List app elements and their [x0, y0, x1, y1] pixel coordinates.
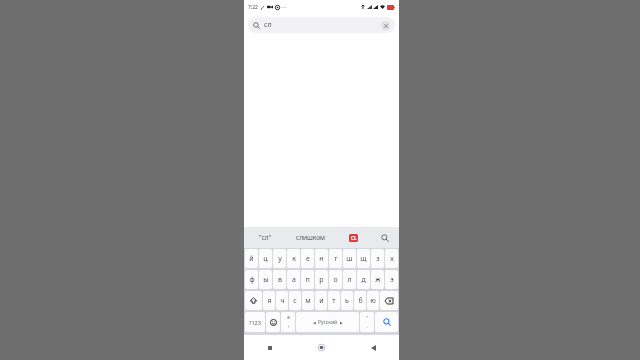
- button[interactable]: ь: [341, 291, 353, 310]
- other: Search: [253, 22, 260, 29]
- staticText: ж: [375, 275, 381, 285]
- staticText: в: [278, 275, 282, 285]
- button[interactable]: м: [302, 291, 314, 310]
- button[interactable]: Emoji: [266, 312, 280, 332]
- button[interactable]: "сл": [244, 227, 286, 248]
- button[interactable]: о: [329, 270, 342, 289]
- button[interactable]: Backspace: [380, 291, 398, 310]
- staticText: э: [390, 275, 394, 285]
- staticText: ю: [370, 296, 376, 306]
- button[interactable]: ю: [367, 291, 379, 310]
- staticText: з: [376, 254, 380, 264]
- staticText: м: [305, 296, 311, 306]
- staticText: т: [332, 296, 336, 306]
- button[interactable]: ф: [245, 270, 258, 289]
- button[interactable]: ц: [259, 249, 272, 268]
- button[interactable]: в: [273, 270, 286, 289]
- staticText: ь: [345, 296, 349, 306]
- button[interactable]: ы: [259, 270, 272, 289]
- button[interactable]: л: [343, 270, 356, 289]
- staticText: а: [292, 275, 296, 285]
- staticText: щ: [360, 254, 367, 264]
- staticText: к: [292, 254, 296, 264]
- staticText: е: [306, 254, 310, 264]
- staticText: Русский: [318, 319, 338, 326]
- staticText: ,: [288, 321, 290, 329]
- button[interactable]: у: [273, 249, 286, 268]
- button[interactable]: р: [315, 270, 328, 289]
- staticText: х: [390, 254, 394, 264]
- staticText: и: [319, 296, 324, 306]
- button[interactable]: ?123: [245, 312, 265, 332]
- staticText: сл: [264, 20, 272, 30]
- button[interactable]: Clear: [381, 21, 390, 30]
- button[interactable]: ч: [276, 291, 288, 310]
- staticText: б: [358, 296, 363, 306]
- staticText: с: [293, 296, 297, 306]
- button[interactable]: т: [328, 291, 340, 310]
- button[interactable]: а: [287, 270, 300, 289]
- staticText: ф: [249, 275, 255, 285]
- staticText: у: [278, 254, 282, 264]
- button[interactable]: й: [245, 249, 258, 268]
- staticText: л: [347, 275, 352, 285]
- button[interactable]: з: [371, 249, 384, 268]
- button[interactable]: Search: [248, 17, 395, 33]
- button[interactable]: е: [301, 249, 314, 268]
- button[interactable]: Home: [295, 335, 347, 360]
- button[interactable]: ш: [343, 249, 356, 268]
- button[interactable]: ,: [281, 312, 295, 332]
- button[interactable]: Back: [347, 335, 399, 360]
- staticText: н: [319, 254, 324, 264]
- staticText: р: [319, 275, 324, 285]
- staticText: ы: [263, 275, 269, 285]
- button[interactable]: г: [329, 249, 342, 268]
- button[interactable]: с: [289, 291, 301, 310]
- staticText: 7:22: [248, 4, 258, 11]
- button[interactable]: щ: [357, 249, 370, 268]
- staticText: ◀: [313, 321, 316, 325]
- button[interactable]: д: [357, 270, 370, 289]
- button[interactable]: э: [385, 270, 398, 289]
- staticText: й: [249, 254, 254, 264]
- button[interactable]: к: [287, 249, 300, 268]
- staticText: .: [367, 322, 369, 330]
- button[interactable]: CL: [336, 227, 370, 248]
- button[interactable]: Search: [375, 312, 398, 332]
- button[interactable]: Recents: [244, 335, 295, 360]
- staticText: я: [267, 296, 272, 306]
- button[interactable]: н: [315, 249, 328, 268]
- button[interactable]: я: [263, 291, 275, 310]
- staticText: ▶: [340, 321, 343, 325]
- button[interactable]: Space: [296, 312, 359, 332]
- button[interactable]: Search suggestions: [370, 227, 399, 248]
- button[interactable]: Shift: [245, 291, 262, 310]
- staticText: д: [361, 275, 366, 285]
- staticText: CL: [351, 235, 357, 241]
- staticText: ···: [282, 4, 287, 11]
- staticText: ш: [346, 254, 353, 264]
- staticText: ч: [280, 296, 285, 306]
- button[interactable]: ": [360, 312, 374, 332]
- staticText: слишком: [296, 233, 326, 242]
- staticText: ц: [263, 254, 268, 264]
- staticText: ": [366, 315, 369, 322]
- button[interactable]: слишком: [286, 227, 336, 248]
- staticText: п: [305, 275, 310, 285]
- staticText: о: [333, 275, 338, 285]
- button[interactable]: и: [315, 291, 327, 310]
- button[interactable]: х: [385, 249, 398, 268]
- button[interactable]: ж: [371, 270, 384, 289]
- staticText: ?123: [249, 319, 261, 326]
- staticText: г: [334, 254, 338, 264]
- button[interactable]: б: [354, 291, 366, 310]
- staticText: "сл": [259, 233, 272, 242]
- button[interactable]: п: [301, 270, 314, 289]
